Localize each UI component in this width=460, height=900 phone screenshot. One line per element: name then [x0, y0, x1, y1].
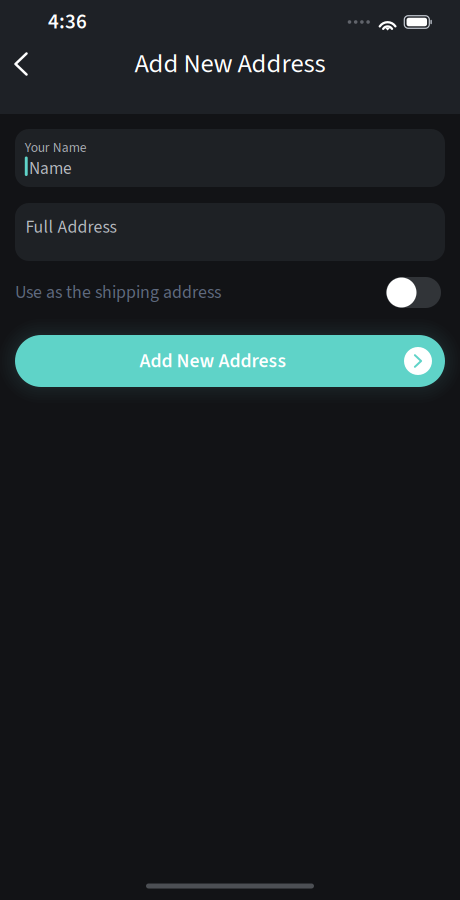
button[interactable]: Add New Address: [15, 335, 445, 387]
staticText: Name: [29, 156, 72, 181]
button[interactable]: Use as the shipping address: [386, 277, 441, 308]
staticText: Use as the shipping address: [15, 280, 221, 305]
staticText: 4:36: [48, 7, 87, 37]
staticText: Add New Address: [134, 45, 325, 83]
staticText: Your Name: [25, 138, 87, 157]
button[interactable]: Back: [0, 44, 42, 84]
staticText: Add New Address: [139, 347, 286, 375]
staticText: Full Address: [25, 214, 116, 240]
